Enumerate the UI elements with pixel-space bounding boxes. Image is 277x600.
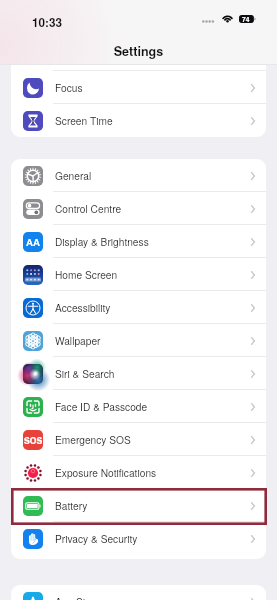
staticText: General	[55, 168, 92, 183]
button[interactable]: Home Screen	[11, 258, 266, 291]
staticText: AA	[26, 235, 40, 249]
staticText: Display & Brightness	[55, 234, 149, 249]
button[interactable]: Screen Time	[11, 104, 266, 137]
staticText: Face ID & Passcode	[55, 399, 148, 414]
button[interactable]: General	[11, 159, 266, 192]
button[interactable]: Wallpaper	[11, 324, 266, 357]
button[interactable]: Siri & Search	[11, 357, 266, 390]
staticText: Home Screen	[55, 267, 118, 282]
staticText: Screen Time	[55, 113, 113, 128]
staticText: Settings	[0, 42, 277, 60]
staticText: App Store	[55, 594, 101, 600]
staticText: SOS	[24, 434, 43, 446]
staticText: Siri & Search	[55, 366, 115, 381]
button[interactable]: Battery	[11, 489, 266, 522]
staticText: Battery	[55, 498, 88, 513]
button[interactable]: Face ID & Passcode	[11, 390, 266, 423]
staticText: 10:33	[32, 14, 63, 31]
staticText: Privacy & Security	[55, 531, 138, 546]
staticText: Emergency SOS	[55, 432, 131, 447]
staticText: Control Centre	[55, 201, 122, 216]
button[interactable]: SOS	[11, 423, 266, 456]
button[interactable]: Control Centre	[11, 192, 266, 225]
staticText: 74	[242, 15, 250, 23]
button[interactable]: Exposure Notifications	[11, 456, 266, 489]
staticText: Focus	[55, 80, 83, 95]
staticText: Wallpaper	[55, 333, 101, 348]
button[interactable]: AA	[11, 225, 266, 258]
staticText: Exposure Notifications	[55, 465, 157, 480]
button[interactable]: Privacy & Security	[11, 522, 266, 555]
button[interactable]: Focus	[11, 71, 266, 104]
button[interactable]: Accessibility	[11, 291, 266, 324]
staticText: Accessibility	[55, 300, 111, 315]
button[interactable]: App Store	[11, 585, 266, 600]
